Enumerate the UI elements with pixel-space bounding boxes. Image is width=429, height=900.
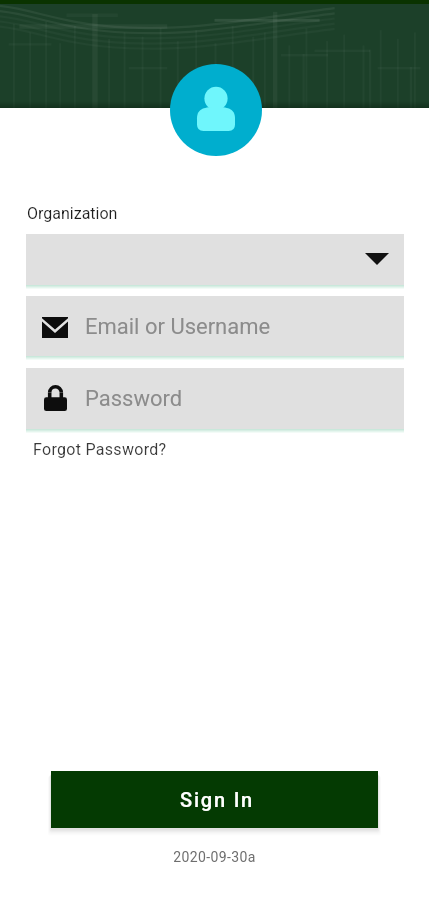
staticText: Organization bbox=[27, 204, 118, 223]
button[interactable] bbox=[26, 234, 404, 285]
other: Profile bbox=[170, 64, 262, 156]
button[interactable]: Forgot Password? bbox=[33, 440, 167, 459]
button[interactable]: Sign In bbox=[51, 771, 378, 828]
staticText: 2020-09-30a bbox=[0, 849, 429, 865]
button[interactable]: Password bbox=[26, 368, 404, 429]
staticText: Forgot Password? bbox=[33, 440, 167, 459]
staticText: Password bbox=[85, 386, 183, 412]
staticText: Email or Username bbox=[85, 314, 271, 340]
staticText: Sign In bbox=[180, 788, 255, 811]
button[interactable]: Email or Username bbox=[26, 296, 404, 356]
